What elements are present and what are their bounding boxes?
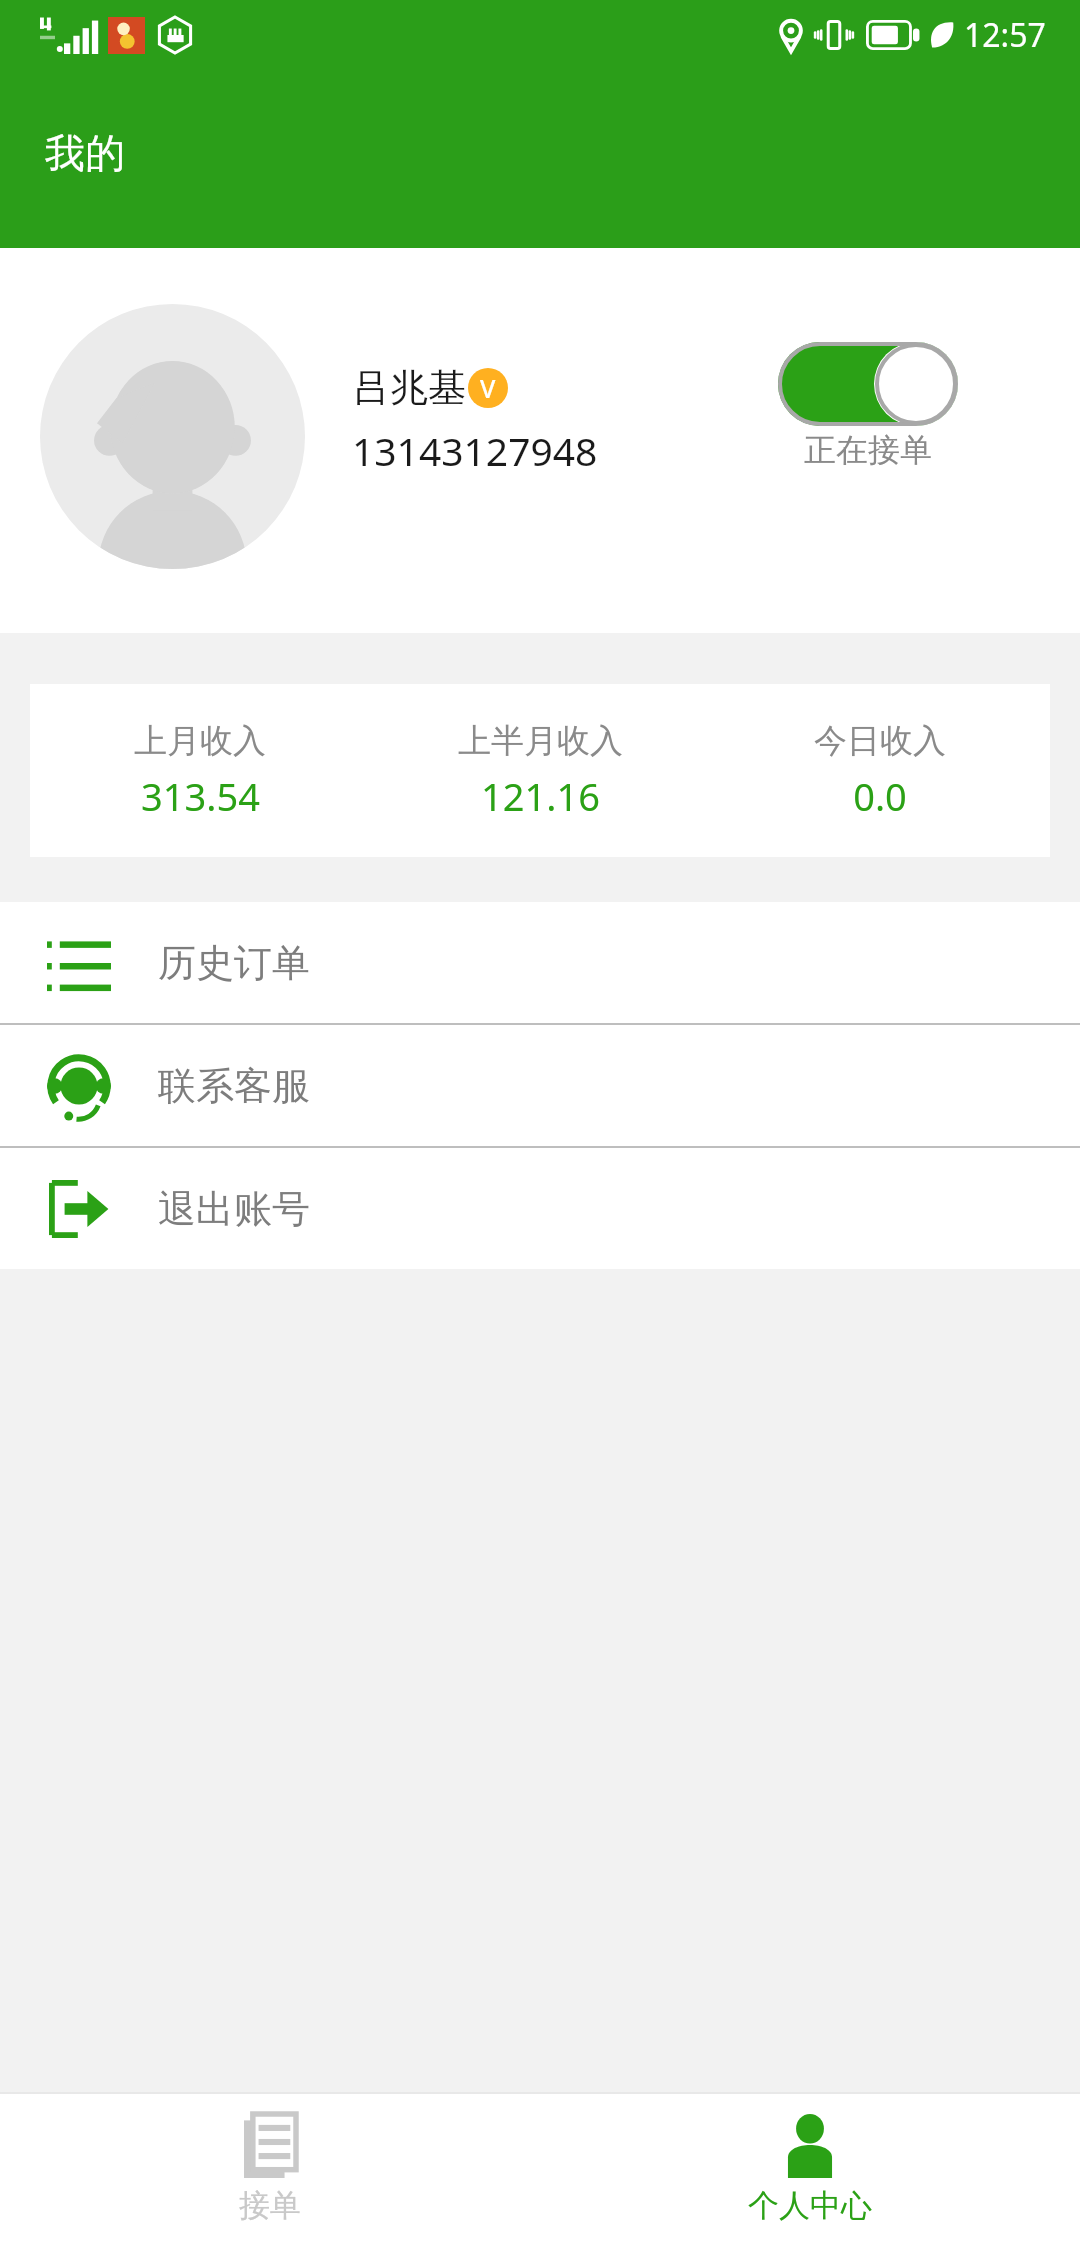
staticText: 13143127948	[352, 424, 598, 477]
staticText: 接单	[239, 2186, 301, 2225]
staticText: 我的	[45, 128, 125, 178]
other: Accepting orders toggle	[778, 342, 958, 426]
button[interactable]: 接单	[0, 2094, 540, 2244]
button[interactable]: 上月收入	[30, 684, 1050, 857]
button[interactable]: 退出账号	[0, 1148, 1080, 1269]
staticText: 吕兆基	[352, 364, 466, 412]
button[interactable]: 个人中心	[540, 2094, 1080, 2244]
button[interactable]: Accepting orders toggle	[778, 342, 958, 470]
staticText: 12:57	[964, 13, 1046, 57]
button[interactable]: 历史订单	[0, 902, 1080, 1023]
staticText: 联系客服	[158, 1062, 310, 1110]
staticText: 历史订单	[158, 939, 310, 987]
staticText: 上半月收入	[458, 720, 623, 762]
staticText: 个人中心	[748, 2186, 872, 2225]
staticText: 上月收入	[134, 720, 266, 762]
staticText: 121.16	[481, 770, 600, 822]
staticText: 退出账号	[158, 1185, 310, 1233]
staticText: 0.0	[853, 770, 907, 822]
staticText: 正在接单	[804, 430, 932, 470]
button[interactable]: 联系客服	[0, 1025, 1080, 1146]
button[interactable]: Profile photo	[40, 304, 305, 569]
staticText: 今日收入	[814, 720, 946, 762]
staticText: V	[480, 371, 496, 405]
staticText: 313.54	[141, 770, 260, 822]
